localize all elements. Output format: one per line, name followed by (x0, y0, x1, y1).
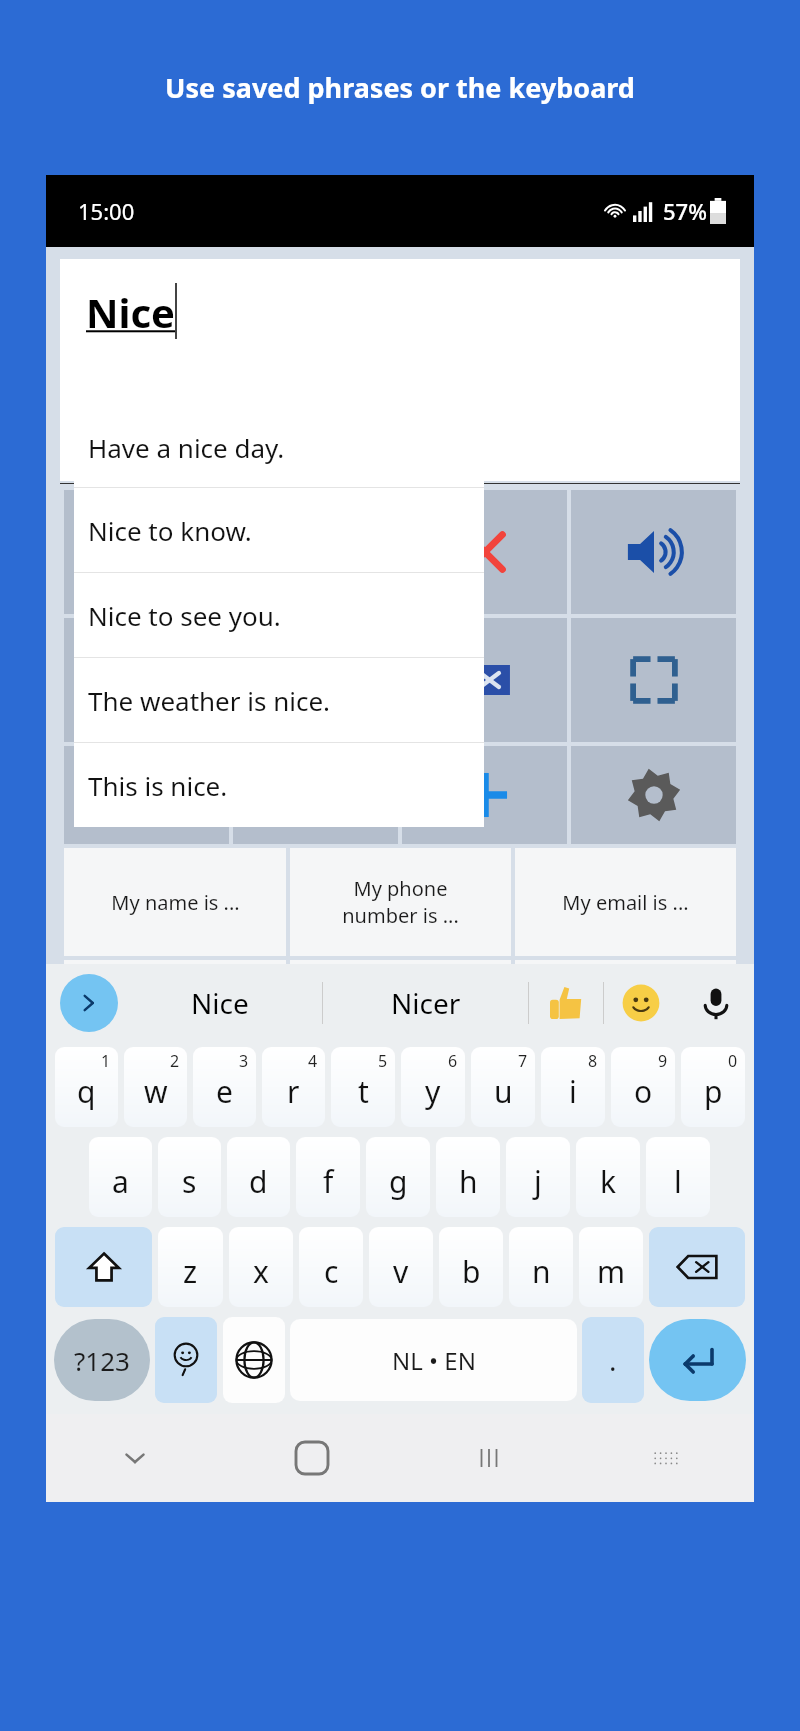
button[interactable]: This is nice. (74, 743, 484, 827)
button[interactable]: Enter (649, 1319, 746, 1401)
button[interactable]: Clear (402, 490, 567, 614)
button[interactable]: Keyboard switcher (577, 1414, 754, 1502)
button[interactable]: Emoji (155, 1317, 217, 1403)
staticText: u (494, 1071, 513, 1112)
staticText: Nice (191, 984, 249, 1022)
staticText: 6 (448, 1050, 458, 1072)
staticText: z (183, 1251, 198, 1292)
button[interactable]: k (576, 1137, 640, 1217)
button[interactable]: Home (64, 746, 229, 844)
staticText: l (674, 1161, 682, 1202)
button[interactable]: l (646, 1137, 710, 1217)
button[interactable]: c (299, 1227, 363, 1307)
button[interactable]: Settings (571, 746, 736, 844)
button[interactable]: The weather is nice. (74, 658, 484, 742)
button[interactable]: Work (233, 746, 398, 844)
button[interactable]: v (369, 1227, 433, 1307)
staticText: b (462, 1251, 481, 1292)
button[interactable]: n (509, 1227, 573, 1307)
staticText: q (77, 1071, 96, 1112)
button[interactable]: My email is ... (515, 848, 736, 956)
button[interactable]: Shift (55, 1227, 152, 1307)
button[interactable]: Recent apps (400, 1414, 577, 1502)
staticText: My phone number is ... (342, 875, 459, 929)
staticText: o (634, 1071, 653, 1112)
button[interactable]: ?123 (54, 1319, 150, 1401)
staticText: 0 (728, 1050, 738, 1072)
button[interactable]: p (681, 1047, 745, 1127)
button[interactable]: Backspace (649, 1227, 745, 1307)
button[interactable]: Nice (60, 259, 740, 481)
button[interactable] (64, 618, 229, 742)
button[interactable]: Speak (571, 490, 736, 614)
staticText: ?123 (74, 1343, 130, 1378)
button[interactable]: Voice input (678, 964, 754, 1042)
button[interactable]: b (439, 1227, 503, 1307)
staticText: 15:00 (78, 196, 135, 226)
button[interactable]: NL • EN (290, 1319, 577, 1401)
staticText: Nicer (391, 984, 461, 1022)
staticText: c (324, 1251, 339, 1292)
button[interactable]: Backspace (402, 618, 567, 742)
button[interactable]: q (55, 1047, 118, 1127)
staticText: 1 (101, 1050, 111, 1072)
button[interactable]: w (124, 1047, 187, 1127)
button[interactable]: d (227, 1137, 290, 1217)
button[interactable]: h (436, 1137, 500, 1217)
staticText: Nice (86, 285, 175, 339)
staticText: 9 (658, 1050, 668, 1072)
button[interactable]: My phone number is ... (290, 848, 511, 956)
staticText: 7 (518, 1050, 528, 1072)
button[interactable]: Home (223, 1414, 400, 1502)
button[interactable]: a (89, 1137, 152, 1217)
button[interactable]: Nicer (323, 964, 528, 1042)
button[interactable]: g (366, 1137, 430, 1217)
button[interactable]: y (401, 1047, 465, 1127)
button[interactable]: m (579, 1227, 643, 1307)
button[interactable]: i (541, 1047, 605, 1127)
staticText: j (534, 1161, 542, 1202)
button[interactable]: r (262, 1047, 325, 1127)
staticText: 5 (378, 1050, 388, 1072)
staticText: Use saved phrases or the keyboard (165, 69, 635, 106)
staticText: w (144, 1071, 168, 1112)
button[interactable]: Nice to know. (74, 488, 484, 572)
button[interactable]: Nice to see you. (74, 573, 484, 657)
button[interactable]: Have a nice day. (74, 407, 484, 487)
button[interactable]: Language (223, 1317, 285, 1403)
staticText: 3 (239, 1050, 249, 1072)
button[interactable] (64, 490, 229, 614)
button[interactable]: Fullscreen (571, 618, 736, 742)
button[interactable]: Smiley emoji (604, 964, 678, 1042)
button[interactable]: j (506, 1137, 570, 1217)
button[interactable]: u (471, 1047, 535, 1127)
button[interactable]: o (611, 1047, 675, 1127)
button[interactable] (233, 618, 398, 742)
staticText: s (182, 1161, 197, 1202)
staticText: . (609, 1341, 617, 1379)
button[interactable]: s (158, 1137, 221, 1217)
button[interactable]: t (331, 1047, 395, 1127)
button[interactable]: x (229, 1227, 293, 1307)
staticText: The weather is nice. (88, 683, 331, 718)
button[interactable]: z (158, 1227, 223, 1307)
button[interactable]: More suggestions (60, 974, 118, 1032)
staticText: k (600, 1161, 617, 1202)
button[interactable]: Add (402, 746, 567, 844)
staticText: 57% (663, 196, 707, 226)
button[interactable]: Nice (118, 964, 322, 1042)
button[interactable]: Thumbs up emoji (529, 964, 603, 1042)
staticText: Nice to know. (88, 513, 252, 548)
button[interactable] (233, 490, 398, 614)
button[interactable]: e (193, 1047, 256, 1127)
button[interactable]: My name is ... (64, 848, 286, 956)
staticText: a (112, 1161, 129, 1202)
staticText: This is nice. (88, 768, 228, 803)
button[interactable]: f (296, 1137, 360, 1217)
button[interactable]: Hide keyboard (46, 1414, 223, 1502)
button[interactable]: Period (582, 1317, 644, 1403)
staticText: My email is ... (562, 889, 689, 916)
